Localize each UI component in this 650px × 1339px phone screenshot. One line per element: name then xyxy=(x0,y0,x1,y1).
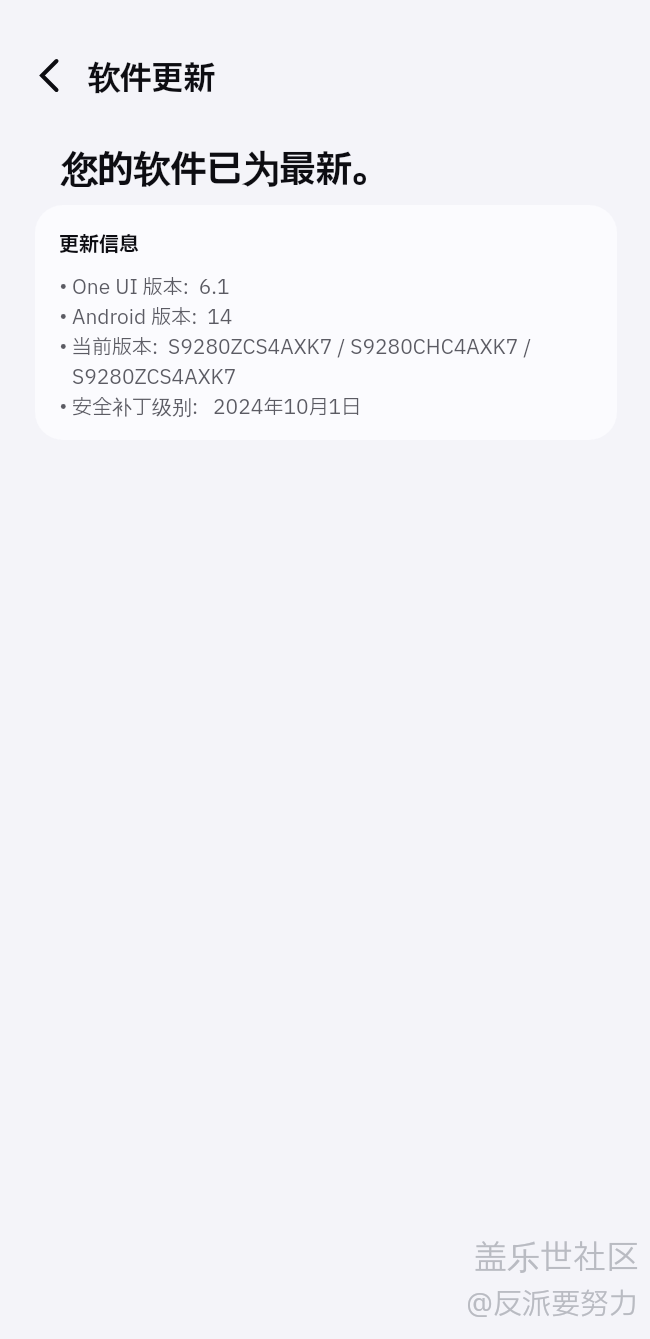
staticText: One UI 版本: 6.1 xyxy=(72,273,230,303)
button[interactable]: Back xyxy=(26,52,72,98)
staticText: 安全补丁级别: 2024年10月1日 xyxy=(72,393,362,423)
staticText: 当前版本: S9280ZCS4AXK7 / S9280CHC4AXK7 / S9… xyxy=(72,333,601,393)
staticText: @反派要努力 xyxy=(466,1283,639,1326)
staticText: 更新信息 xyxy=(59,230,139,260)
staticText: 盖乐世社区 xyxy=(474,1234,639,1283)
staticText: 软件更新 xyxy=(88,55,216,103)
staticText: 您的软件已为最新。 xyxy=(61,143,389,198)
staticText: Android 版本: 14 xyxy=(72,303,233,333)
